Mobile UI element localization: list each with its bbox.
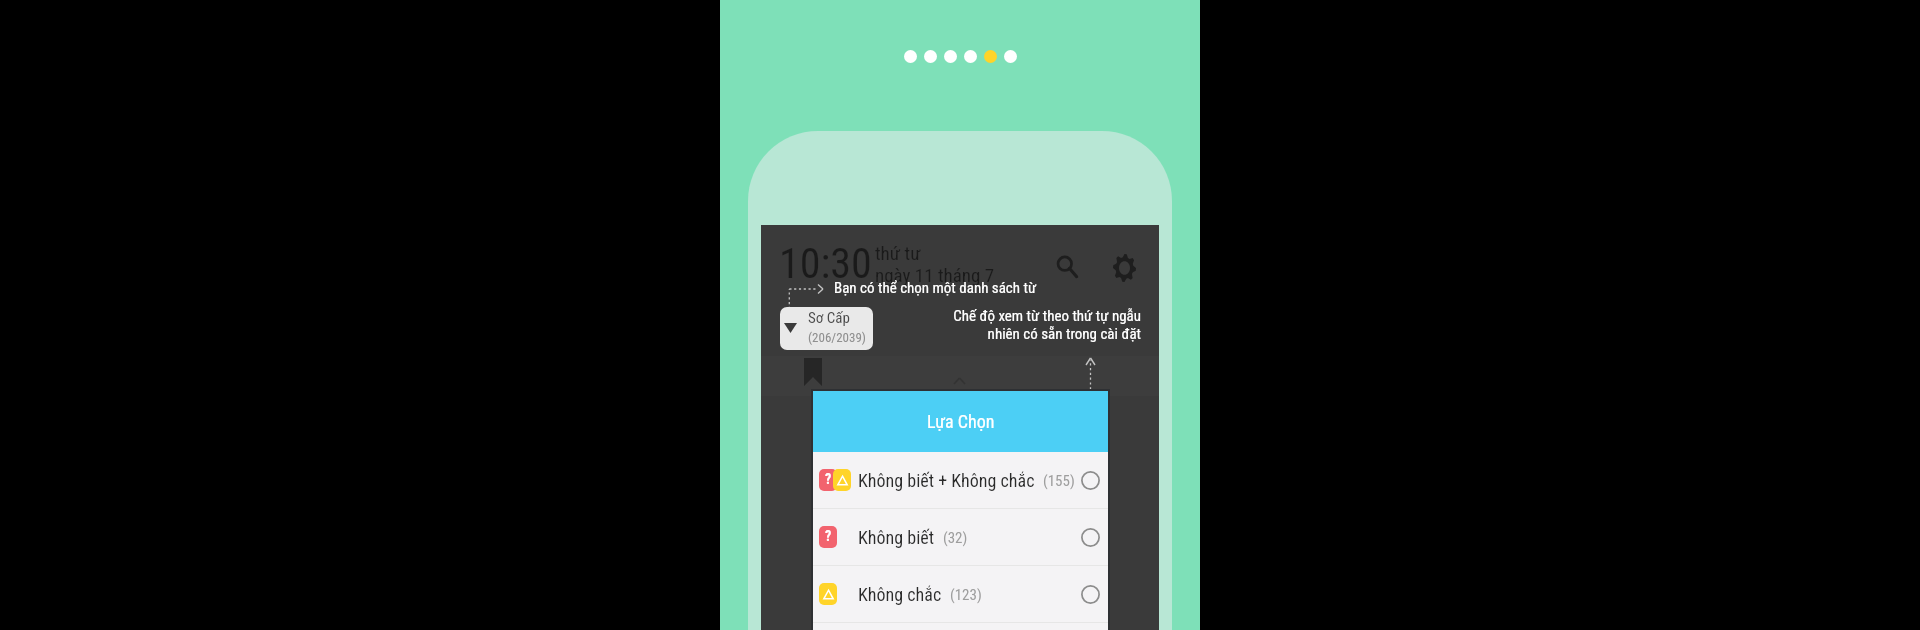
staticText: Lựa Chọn xyxy=(927,411,995,432)
button[interactable]: Page 1 xyxy=(904,50,917,63)
button[interactable]: Sơ Cấp xyxy=(780,307,873,350)
button[interactable]: Bookmark xyxy=(804,358,822,386)
staticText: Bạn có thể chọn một danh sách từ xyxy=(834,279,1037,297)
staticText: ngày 11 tháng 7 xyxy=(875,264,995,286)
staticText: thứ tư xyxy=(875,242,921,264)
button[interactable]: Page 3 xyxy=(944,50,957,63)
button[interactable]: Page 6 xyxy=(1004,50,1017,63)
staticText: ? xyxy=(825,471,832,487)
button[interactable]: Settings xyxy=(1108,252,1140,284)
button[interactable]: ? xyxy=(813,452,1108,508)
staticText: (206/2039) xyxy=(808,330,866,345)
staticText: (123) xyxy=(950,586,982,604)
button[interactable]: ? xyxy=(813,509,1108,565)
staticText: ? xyxy=(825,528,832,544)
staticText: Không chắc xyxy=(858,584,942,605)
button[interactable]: Lựa Chọn xyxy=(813,391,1108,452)
button[interactable]: Page 4 xyxy=(964,50,977,63)
button[interactable]: Không chắc xyxy=(813,566,1108,622)
staticText: Không biết xyxy=(858,527,935,548)
staticText: Sơ Cấp xyxy=(808,309,850,327)
button[interactable]: Page 5 xyxy=(984,50,997,63)
staticText: nhiên có sẵn trong cài đặt xyxy=(987,325,1141,343)
button[interactable]: Page 2 xyxy=(924,50,937,63)
staticText: 10:30 xyxy=(779,239,872,288)
staticText: (32) xyxy=(943,529,968,547)
staticText: (155) xyxy=(1043,472,1075,490)
staticText: Chế độ xem từ theo thứ tự ngẫu xyxy=(953,307,1141,325)
staticText: Không biết + Không chắc xyxy=(858,470,1035,491)
button[interactable]: Search xyxy=(1051,251,1083,283)
